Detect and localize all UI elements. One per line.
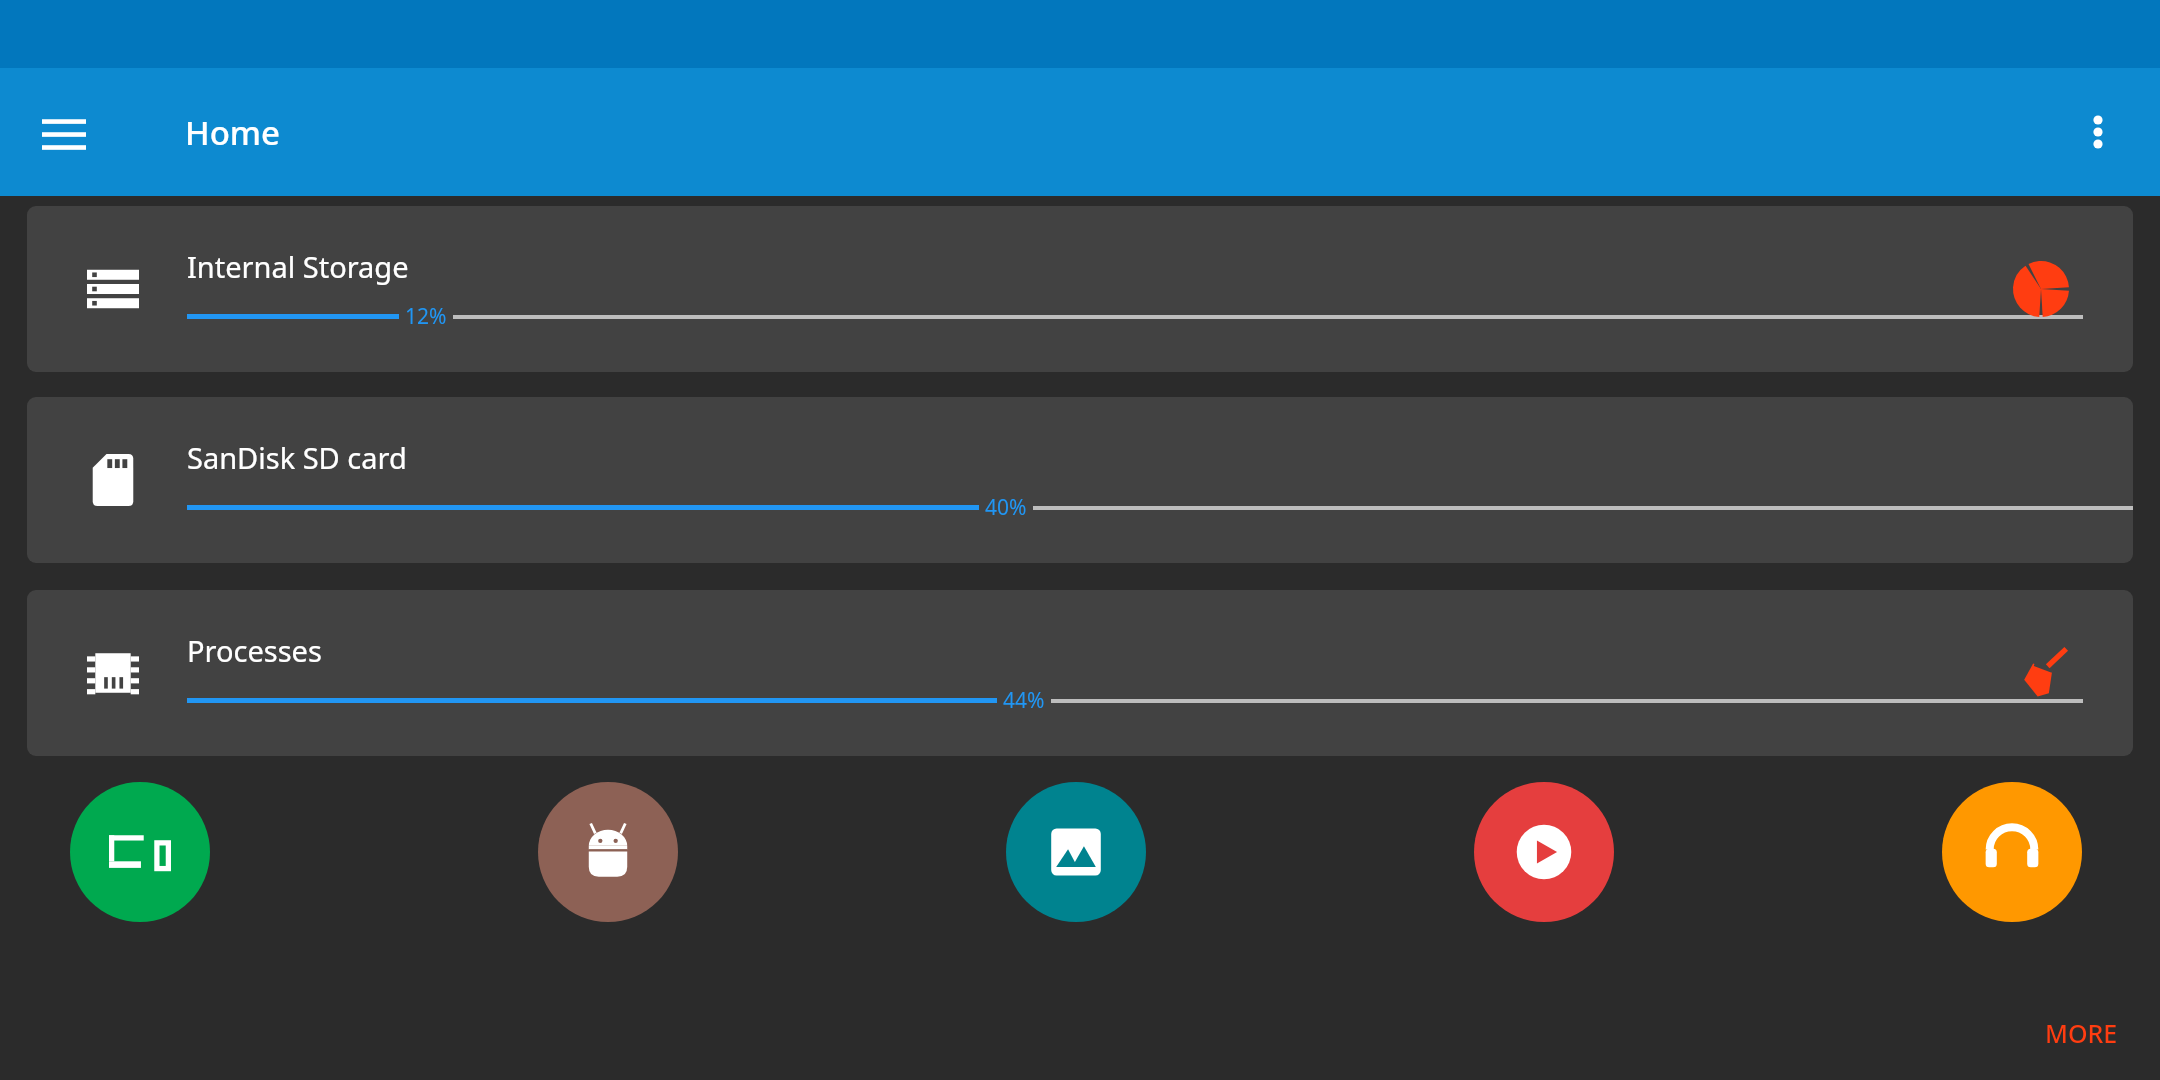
staticText: Internal Storage	[187, 247, 409, 286]
button[interactable]: Apps	[538, 782, 678, 922]
button[interactable]: Storage analysis	[2003, 251, 2079, 327]
button[interactable]: SanDisk SD card	[27, 397, 2133, 563]
button[interactable]: Audio	[1942, 782, 2082, 922]
staticText: 40%	[985, 493, 1027, 522]
button[interactable]: Internal Storage	[27, 206, 2133, 372]
button[interactable]: Open navigation drawer	[22, 90, 106, 174]
staticText: MORE	[2045, 1016, 2118, 1050]
staticText: SanDisk SD card	[187, 438, 407, 477]
staticText: Home	[185, 110, 281, 155]
button[interactable]: Devices	[70, 782, 210, 922]
button[interactable]: MORE	[2031, 1008, 2132, 1058]
staticText: 44%	[1003, 686, 1045, 715]
button[interactable]: Processes	[27, 590, 2133, 756]
button[interactable]: Clean processes	[2003, 635, 2079, 711]
button[interactable]: More options	[2056, 90, 2140, 174]
staticText: Processes	[187, 631, 322, 670]
button[interactable]: Videos	[1474, 782, 1614, 922]
button[interactable]: Images	[1006, 782, 1146, 922]
staticText: 12%	[405, 302, 447, 331]
